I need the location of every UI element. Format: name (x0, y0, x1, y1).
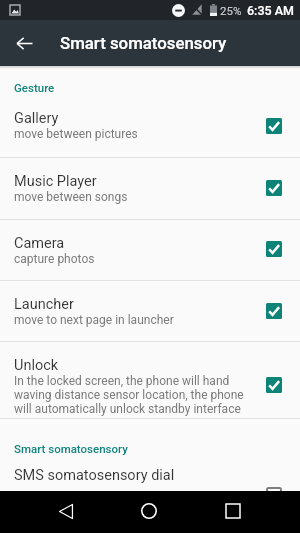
staticText: Unlock (14, 357, 59, 374)
staticText: move to next page in launcher (14, 313, 174, 327)
staticText: Music Player (14, 173, 97, 190)
button[interactable]: Disabled (266, 487, 282, 503)
button[interactable]: Gallery (0, 98, 300, 157)
button[interactable]: Home (129, 491, 169, 531)
button[interactable]: Enabled (266, 377, 282, 393)
button[interactable]: SMS somatosensory dial (0, 464, 300, 504)
staticText: Launcher (14, 296, 74, 313)
staticText: SMS somatosensory dial (14, 467, 266, 484)
button[interactable]: Enabled (266, 180, 282, 196)
staticText: Camera (14, 235, 65, 252)
button[interactable]: Back (10, 29, 38, 57)
staticText: capture photos (14, 252, 95, 266)
staticText: Gallery (14, 110, 59, 127)
button[interactable]: Music Player (0, 159, 300, 219)
button[interactable]: Unlock (0, 342, 300, 418)
staticText: waving distance sensor location, the pho… (14, 388, 244, 402)
staticText: Smart somatosensory (60, 33, 227, 53)
staticText: will automatically unlock standby interf… (14, 402, 241, 416)
staticText: move between pictures (14, 127, 138, 141)
button[interactable]: Enabled (266, 303, 282, 319)
staticText: 6:35 AM (247, 3, 294, 18)
button[interactable]: Enabled (266, 118, 282, 134)
staticText: 25% (220, 4, 242, 17)
staticText: Gesture (14, 81, 55, 94)
button[interactable]: Back (46, 491, 86, 531)
staticText: In the locked screen, the phone will han… (14, 374, 230, 388)
button[interactable]: Camera (0, 221, 300, 280)
staticText: move between songs (14, 190, 128, 204)
button[interactable]: Enabled (266, 241, 282, 257)
staticText: Smart somatosensory (14, 442, 128, 455)
button[interactable]: Launcher (0, 282, 300, 341)
button[interactable]: Recent apps (213, 491, 253, 531)
